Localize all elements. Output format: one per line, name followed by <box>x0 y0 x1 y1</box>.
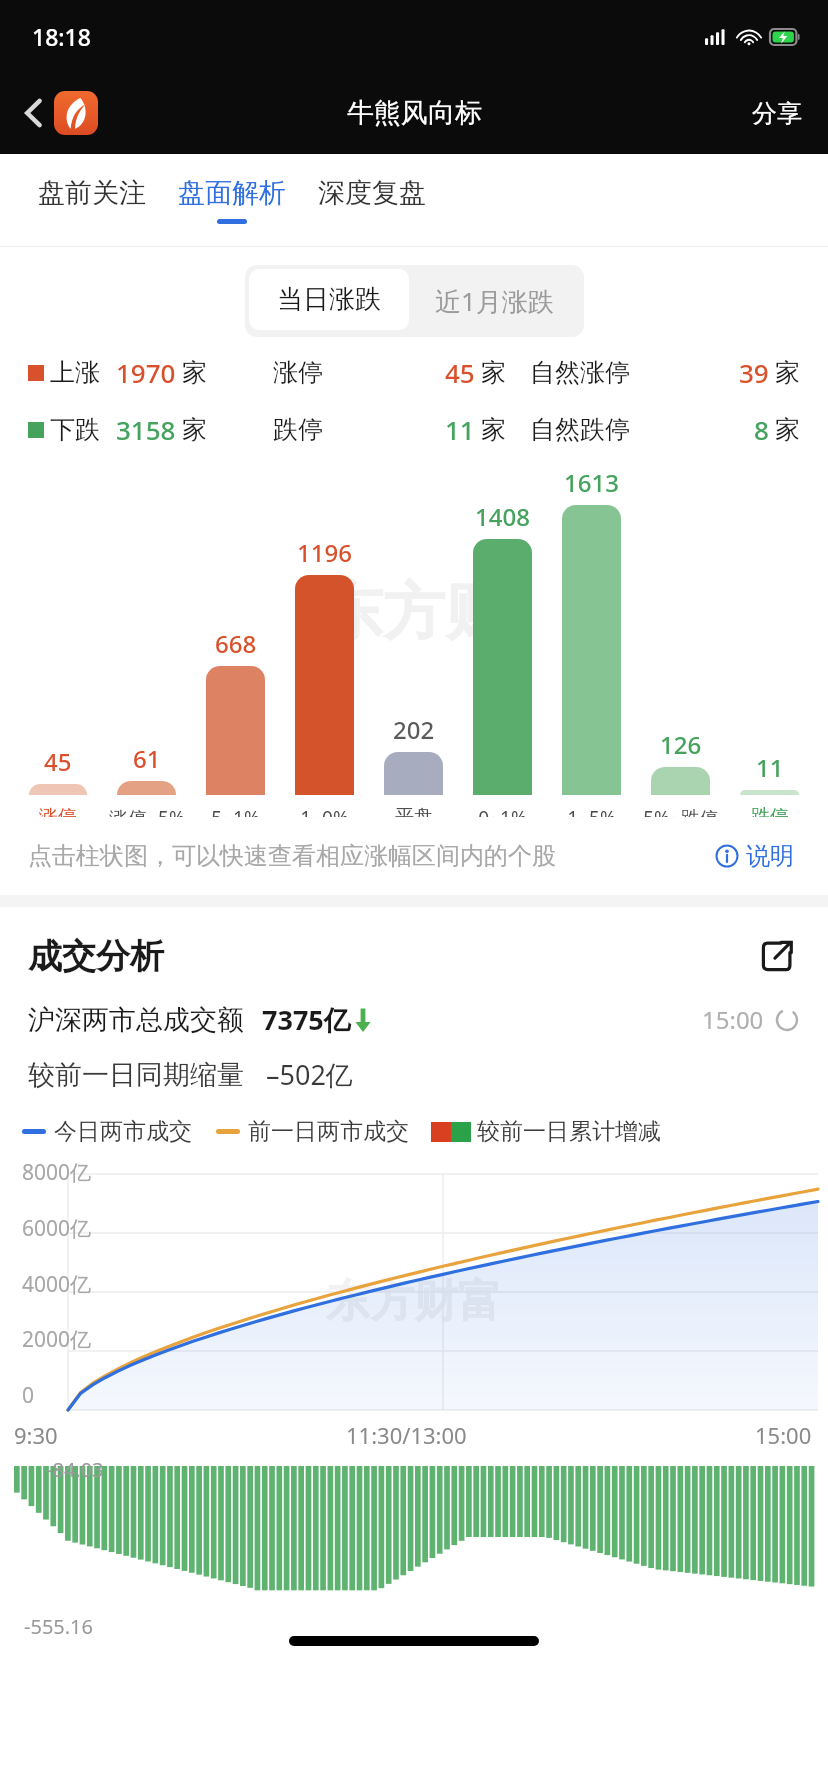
staticText: 11 <box>756 751 784 784</box>
staticText: –502亿 <box>266 1056 353 1093</box>
other: Back <box>24 97 44 129</box>
staticText: 1970 <box>116 355 176 390</box>
staticText: 涨停 <box>39 805 77 817</box>
staticText: 1408 <box>475 500 530 533</box>
staticText: 自然跌停 <box>530 414 630 445</box>
button[interactable]: 61 <box>102 447 191 795</box>
button[interactable]: 说明 <box>709 835 800 877</box>
button[interactable]: 1408 <box>458 447 547 795</box>
button[interactable]: Back <box>18 85 104 141</box>
staticText: 3158 <box>116 412 176 447</box>
staticText: 家 <box>775 357 800 388</box>
staticText: 说明 <box>746 841 794 871</box>
staticText: 668 <box>215 627 257 660</box>
staticText: 涨停~5% <box>109 805 185 817</box>
staticText: 平盘 <box>395 805 433 817</box>
staticText: 牛熊风向标 <box>347 96 482 130</box>
staticText: 9:30 <box>14 1420 58 1450</box>
button[interactable]: 盘面解析 <box>162 166 302 234</box>
staticText: 跌停 <box>751 805 789 817</box>
button[interactable]: 深度复盘 <box>302 166 442 234</box>
staticText: 15:00 <box>755 1420 812 1450</box>
staticText: 点击柱状图，可以快速查看相应涨幅区间内的个股 <box>28 841 556 871</box>
staticText: 8 <box>754 412 769 447</box>
staticText: 7375亿 <box>262 1001 351 1038</box>
staticText: 11 <box>445 412 475 447</box>
staticText: 0 <box>22 1381 35 1410</box>
staticText: 分享 <box>752 98 802 129</box>
staticText: 2000亿 <box>22 1325 92 1354</box>
staticText: -555.16 <box>24 1613 93 1640</box>
staticText: 61 <box>133 742 161 775</box>
staticText: -84.03 <box>46 1456 104 1483</box>
staticText: 45 <box>44 745 72 778</box>
staticText: 自然涨停 <box>530 357 630 388</box>
staticText: 6000亿 <box>22 1214 92 1243</box>
button[interactable]: Open <box>754 933 800 979</box>
staticText: 126 <box>660 728 702 761</box>
button[interactable]: 668 <box>191 447 280 795</box>
staticText: 近1月涨跌 <box>435 283 554 319</box>
staticText: 1613 <box>564 466 619 499</box>
staticText: 18:18 <box>32 21 91 52</box>
staticText: 下跌 <box>50 414 100 445</box>
staticText: 家 <box>182 357 207 388</box>
staticText: 0~1% <box>478 805 527 817</box>
staticText: 较前一日同期缩量 <box>28 1058 244 1092</box>
staticText: 盘面解析 <box>178 176 286 210</box>
staticText: 39 <box>739 355 769 390</box>
staticText: 8000亿 <box>22 1158 92 1187</box>
staticText: 跌停 <box>273 414 323 445</box>
staticText: 今日两市成交 <box>54 1117 192 1146</box>
staticText: 涨停 <box>273 357 323 388</box>
staticText: 盘前关注 <box>38 176 146 210</box>
staticText: 5~1% <box>211 805 260 817</box>
staticText: 45 <box>445 355 475 390</box>
staticText: 家 <box>481 414 506 445</box>
button[interactable]: 分享 <box>726 84 828 143</box>
staticText: 深度复盘 <box>318 176 426 210</box>
button[interactable]: 1613 <box>547 447 636 795</box>
button[interactable]: 当日涨跌 <box>249 269 409 330</box>
staticText: 较前一日累计增减 <box>477 1117 661 1146</box>
staticText: 沪深两市总成交额 <box>28 1003 244 1037</box>
button[interactable]: 近1月涨跌 <box>409 269 580 333</box>
staticText: 家 <box>182 414 207 445</box>
staticText: 上涨 <box>50 357 100 388</box>
button[interactable]: 202 <box>369 447 458 795</box>
staticText: 1196 <box>297 536 352 569</box>
button[interactable]: 11 <box>725 447 814 795</box>
button[interactable]: 126 <box>636 447 725 795</box>
staticText: 成交分析 <box>28 935 164 978</box>
staticText: 东方财富 <box>326 1274 502 1329</box>
other: Refresh <box>774 1007 800 1033</box>
button[interactable]: 盘前关注 <box>22 166 162 234</box>
staticText: 202 <box>393 713 435 746</box>
staticText: 家 <box>775 414 800 445</box>
staticText: 当日涨跌 <box>277 283 381 316</box>
button[interactable]: 45 <box>14 447 102 795</box>
staticText: 5%~跌停 <box>643 805 719 817</box>
staticText: 1~5% <box>567 805 616 817</box>
staticText: 东方财 <box>321 573 507 651</box>
other: App icon <box>54 91 98 135</box>
staticText: 1~0% <box>300 805 349 817</box>
staticText: 15:00 <box>702 1003 764 1036</box>
staticText: 家 <box>481 357 506 388</box>
staticText: 前一日两市成交 <box>248 1117 409 1146</box>
button[interactable]: 1196 <box>280 447 369 795</box>
staticText: 11:30/13:00 <box>346 1420 467 1450</box>
staticText: 4000亿 <box>22 1270 92 1299</box>
